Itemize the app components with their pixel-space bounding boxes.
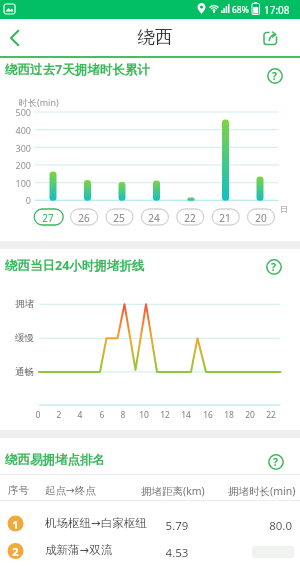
- staticText: 18: [219, 409, 239, 421]
- button[interactable]: [0, 538, 300, 566]
- button[interactable]: [211, 209, 239, 225]
- staticText: 10: [134, 409, 154, 421]
- staticText: 序号: [8, 484, 29, 497]
- button[interactable]: ?: [267, 68, 283, 84]
- button[interactable]: [34, 209, 62, 225]
- staticText: 20: [240, 409, 260, 421]
- staticText: 200: [3, 159, 31, 171]
- staticText: 绕西当日24小时拥堵折线: [5, 257, 145, 274]
- button[interactable]: ?: [266, 259, 282, 275]
- staticText: 缓慢: [15, 332, 34, 344]
- staticText: 0: [3, 194, 31, 206]
- staticText: 4: [70, 409, 90, 421]
- button[interactable]: [176, 209, 204, 225]
- staticText: 14: [176, 409, 196, 421]
- staticText: 8: [113, 409, 133, 421]
- staticText: 16: [198, 409, 218, 421]
- staticText: 绕西过去7天拥堵时长累计: [5, 61, 150, 78]
- button[interactable]: [0, 18, 48, 56]
- staticText: 绕西易拥堵点排名: [5, 452, 105, 468]
- staticText: 机场枢纽→白家枢纽: [45, 516, 147, 530]
- staticText: 68%: [232, 4, 249, 16]
- staticText: ?: [271, 260, 277, 274]
- staticText: 拥堵距离(km): [141, 484, 205, 498]
- staticText: 成新蒲→双流: [45, 543, 113, 557]
- staticText: 6: [92, 409, 112, 421]
- staticText: 22: [176, 211, 204, 225]
- staticText: 通畅: [15, 366, 34, 378]
- staticText: 0: [28, 409, 48, 421]
- staticText: 5.79: [160, 518, 194, 534]
- button[interactable]: [0, 510, 300, 538]
- staticText: 80.0: [258, 518, 292, 534]
- staticText: 25: [105, 211, 133, 225]
- staticText: 时长(min): [19, 96, 59, 108]
- staticText: 500: [3, 106, 31, 118]
- staticText: 4.53: [160, 545, 194, 561]
- staticText: 100: [3, 177, 31, 189]
- staticText: 绕西: [5, 26, 300, 48]
- staticText: 17:08: [264, 3, 290, 17]
- staticText: 400: [3, 124, 31, 136]
- button[interactable]: [140, 209, 168, 225]
- staticText: 拥堵时长(min): [228, 484, 296, 498]
- staticText: 2: [8, 544, 23, 559]
- button[interactable]: [105, 209, 133, 225]
- staticText: 1: [8, 517, 23, 532]
- button[interactable]: [252, 18, 300, 56]
- staticText: 300: [3, 142, 31, 154]
- staticText: ?: [272, 69, 278, 83]
- staticText: 12: [155, 409, 175, 421]
- button[interactable]: [70, 209, 98, 225]
- staticText: 20: [247, 211, 275, 225]
- staticText: 拥堵: [15, 298, 34, 310]
- staticText: 27: [34, 211, 62, 225]
- staticText: 24: [140, 211, 168, 225]
- button[interactable]: ?: [268, 454, 284, 470]
- staticText: 2: [49, 409, 69, 421]
- staticText: 22: [261, 409, 281, 421]
- button[interactable]: [247, 209, 275, 225]
- staticText: 起点→终点: [45, 484, 96, 497]
- staticText: 26: [70, 211, 98, 225]
- staticText: 21: [211, 211, 239, 225]
- staticText: 日: [280, 204, 288, 214]
- staticText: ?: [273, 455, 279, 469]
